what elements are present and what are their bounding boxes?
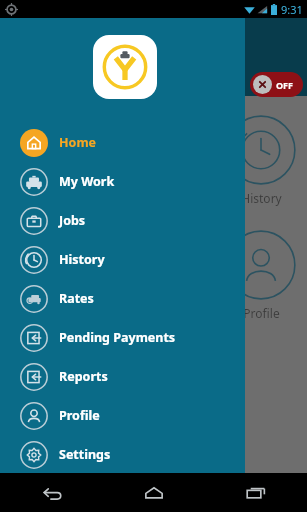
staticText: History [241, 190, 282, 206]
staticText: Reports [59, 368, 108, 385]
button[interactable]: Rates [0, 279, 245, 318]
button[interactable]: History [0, 240, 245, 279]
button[interactable]: Home [0, 123, 245, 162]
staticText: 9:31 [281, 2, 303, 17]
staticText: Profile [243, 305, 280, 321]
button[interactable]: Recent apps [205, 473, 307, 512]
staticText: Profile [59, 407, 100, 424]
button[interactable]: Jobs [0, 201, 245, 240]
button[interactable]: Home [103, 473, 205, 512]
button[interactable]: Reports [0, 357, 245, 396]
button[interactable]: My Work [0, 162, 245, 201]
button[interactable]: Profile [0, 396, 245, 435]
button[interactable]: Pending Payments [0, 318, 245, 357]
staticText: Rates [59, 290, 94, 307]
button[interactable]: OFF [250, 72, 303, 97]
staticText: Jobs [59, 212, 86, 229]
staticText: Home [59, 134, 97, 151]
staticText: Pending Payments [59, 329, 176, 346]
staticText: OFF [276, 79, 294, 91]
button[interactable]: Settings [0, 435, 245, 474]
staticText: Settings [59, 446, 111, 463]
staticText: My Work [59, 173, 115, 190]
button[interactable]: Back [0, 473, 103, 512]
staticText: History [59, 251, 105, 268]
